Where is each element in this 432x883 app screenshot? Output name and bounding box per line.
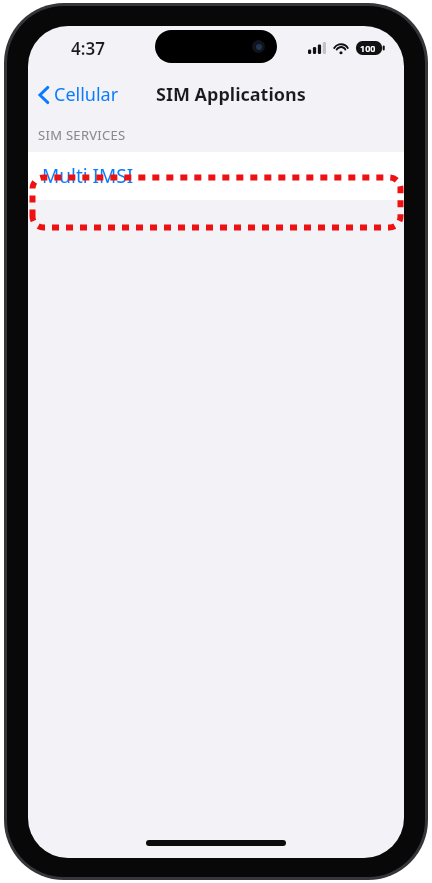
other: Cellular signal strength	[308, 42, 326, 54]
staticText: Cellular	[54, 82, 119, 107]
button[interactable]: Cellular	[34, 76, 123, 113]
staticText: SIM SERVICES	[38, 126, 126, 144]
staticText: Multi IMSI	[42, 163, 134, 189]
staticText: 100	[360, 42, 376, 54]
other: Wi-Fi	[333, 42, 349, 54]
staticText: SIM Applications	[156, 82, 306, 107]
staticText: 4:37	[71, 37, 105, 60]
button[interactable]: Multi IMSI	[28, 152, 404, 200]
other: Battery 100 percent	[356, 41, 385, 55]
